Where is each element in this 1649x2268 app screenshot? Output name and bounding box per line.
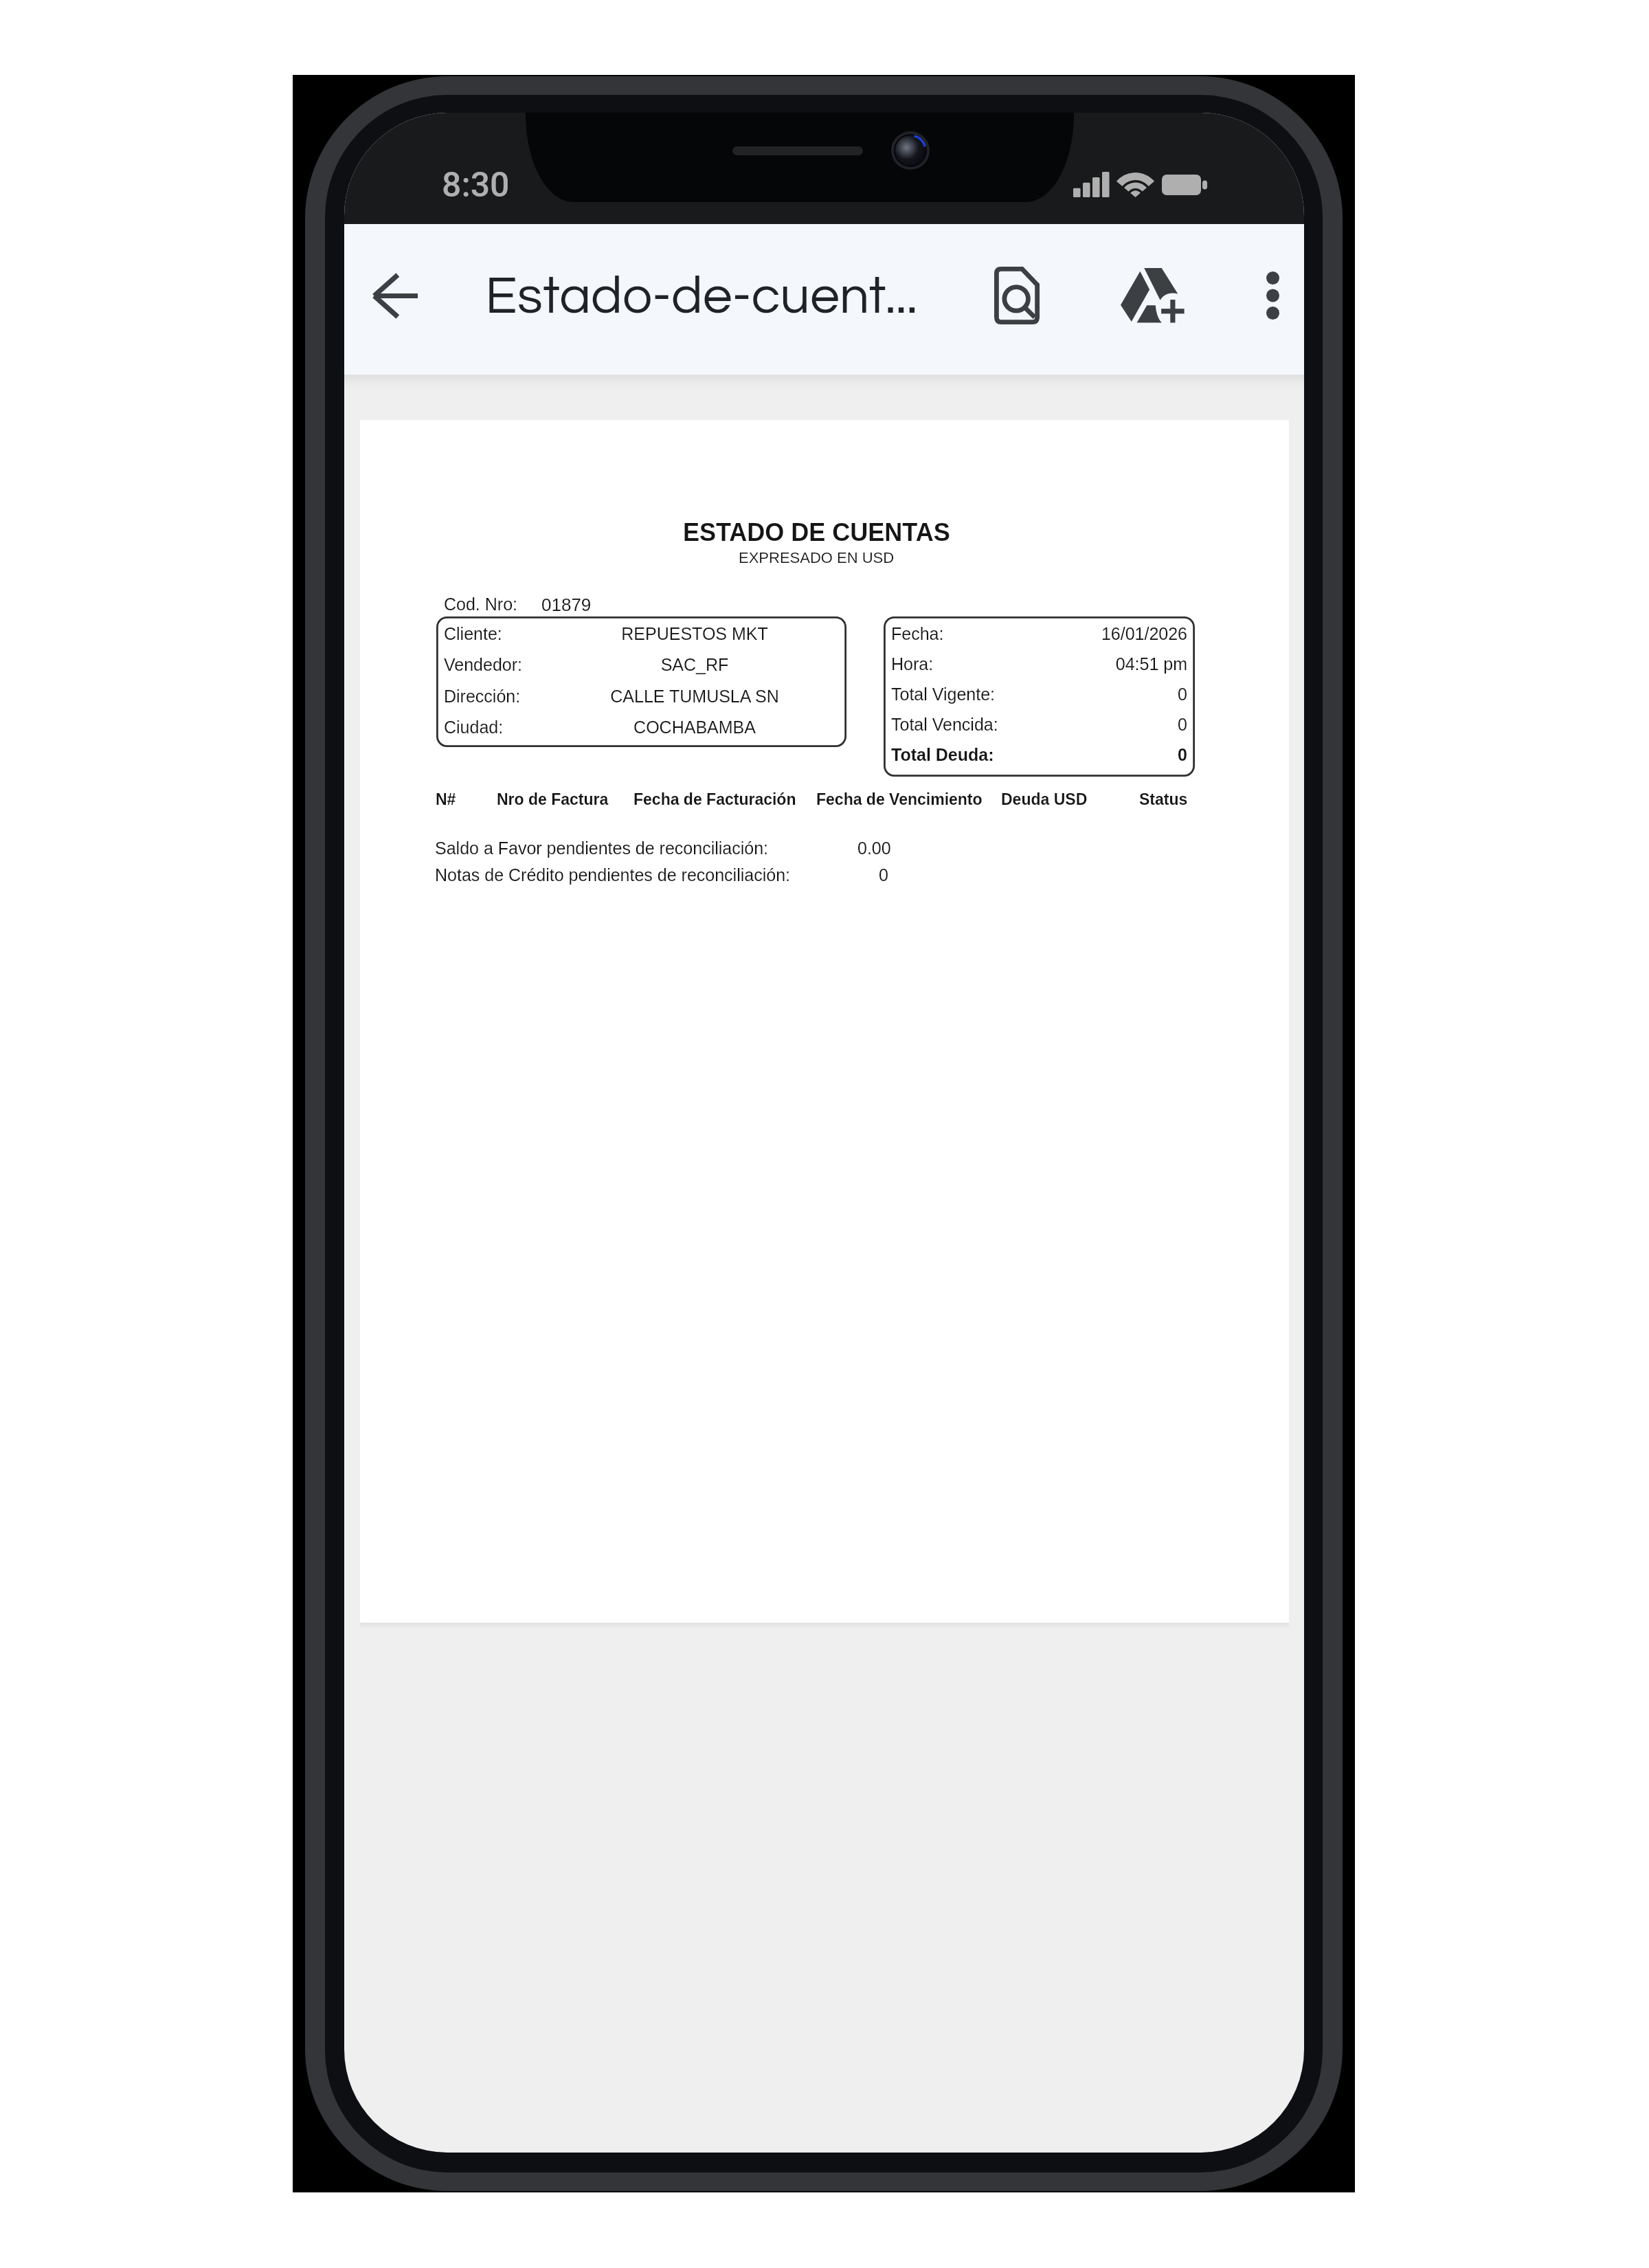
- staticText: COCHABAMBA: [550, 718, 839, 737]
- staticText: Fecha de Facturación: [633, 790, 796, 808]
- staticText: Total Vencida:: [891, 715, 998, 734]
- staticText: 0.00: [857, 838, 891, 858]
- staticText: Vendedor:: [444, 655, 522, 674]
- staticText: 01879: [541, 594, 592, 614]
- staticText: Estado-de-cuent...: [485, 269, 918, 324]
- button[interactable]: Back: [352, 254, 436, 337]
- staticText: 0: [951, 685, 1187, 704]
- button[interactable]: More options: [1231, 254, 1304, 337]
- staticText: Fecha de Vencimiento: [816, 790, 983, 808]
- staticText: Fecha:: [891, 624, 944, 643]
- staticText: Total Vigente:: [891, 685, 996, 704]
- button[interactable]: Save to Drive: [1110, 254, 1193, 337]
- staticText: 0: [951, 715, 1187, 734]
- staticText: Deuda USD: [1001, 790, 1088, 808]
- staticText: 16/01/2026: [951, 624, 1187, 643]
- staticText: 04:51 pm: [951, 654, 1187, 674]
- staticText: Cod. Nro:: [444, 594, 517, 614]
- staticText: ESTADO DE CUENTAS: [683, 518, 950, 546]
- staticText: Nro de Factura: [497, 790, 609, 808]
- staticText: Status: [1139, 790, 1188, 808]
- staticText: Cliente:: [444, 624, 502, 643]
- staticText: Hora:: [891, 654, 934, 674]
- staticText: Notas de Crédito pendientes de reconcili…: [435, 865, 790, 885]
- staticText: 8:30: [442, 165, 510, 205]
- staticText: Ciudad:: [444, 718, 504, 737]
- staticText: Total Deuda:: [891, 745, 994, 764]
- staticText: Saldo a Favor pendientes de reconciliaci…: [435, 838, 769, 858]
- staticText: 0: [951, 745, 1187, 764]
- staticText: N#: [436, 790, 456, 808]
- staticText: CALLE TUMUSLA SN: [550, 687, 839, 706]
- staticText: REPUESTOS MKT: [550, 624, 839, 643]
- button[interactable]: Find in document: [975, 254, 1059, 337]
- staticText: Dirección:: [444, 687, 521, 706]
- staticText: SAC_RF: [550, 655, 839, 674]
- staticText: EXPRESADO EN USD: [739, 549, 895, 566]
- staticText: 0: [879, 865, 888, 885]
